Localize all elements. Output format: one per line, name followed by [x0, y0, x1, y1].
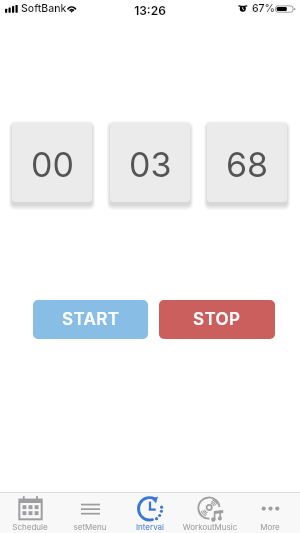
staticText: 00	[31, 144, 74, 185]
staticText: Interval	[120, 522, 180, 532]
staticText: Schedule	[0, 522, 60, 532]
button[interactable]: Schedule	[0, 493, 60, 533]
staticText: SoftBank	[21, 2, 67, 15]
button[interactable]: WorkoutMusic	[180, 493, 240, 533]
staticText: STOP	[193, 309, 241, 330]
staticText: WorkoutMusic	[180, 522, 240, 532]
button[interactable]: 00	[12, 123, 92, 202]
staticText: 68	[226, 144, 269, 185]
button[interactable]: setMenu	[60, 493, 120, 533]
button[interactable]: Interval	[120, 493, 180, 533]
button[interactable]: More	[240, 493, 300, 533]
staticText: 67%	[252, 2, 276, 15]
staticText: 13:26	[0, 3, 300, 18]
button[interactable]: 03	[110, 123, 190, 202]
staticText: setMenu	[60, 522, 120, 532]
button[interactable]: 68	[207, 123, 287, 202]
staticText: 03	[129, 144, 172, 185]
staticText: More	[240, 522, 300, 532]
staticText: START	[62, 309, 120, 330]
button[interactable]: STOP	[159, 300, 275, 339]
button[interactable]: START	[33, 300, 148, 339]
